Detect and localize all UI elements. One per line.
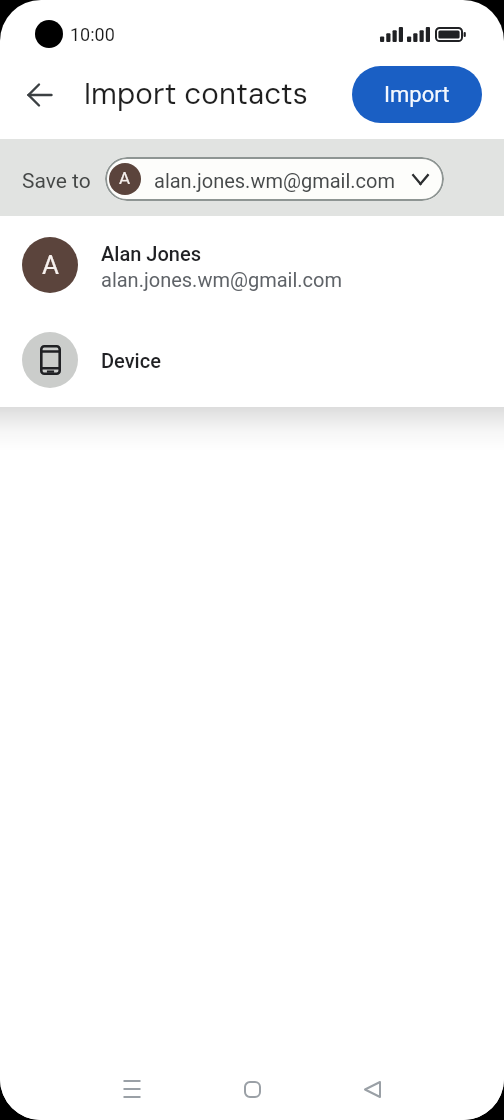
staticText: Import contacts: [84, 75, 308, 113]
staticText: Import: [384, 82, 450, 108]
button[interactable]: Back: [16, 71, 64, 119]
staticText: Save to: [22, 169, 91, 194]
staticText: A: [42, 250, 59, 280]
staticText: 10:00: [70, 24, 115, 45]
staticText: alan.jones.wm@gmail.com: [154, 169, 395, 192]
staticText: Device: [101, 349, 161, 372]
staticText: alan.jones.wm@gmail.com: [101, 268, 342, 291]
button[interactable]: Device: [0, 332, 504, 388]
button[interactable]: Back: [348, 1065, 396, 1113]
staticText: Alan Jones: [101, 242, 202, 265]
button[interactable]: A: [105, 157, 444, 201]
button[interactable]: A: [0, 237, 504, 293]
button[interactable]: Import: [352, 66, 482, 123]
button[interactable]: Home: [228, 1065, 276, 1113]
button[interactable]: Recent apps: [108, 1065, 156, 1113]
staticText: A: [119, 168, 131, 188]
